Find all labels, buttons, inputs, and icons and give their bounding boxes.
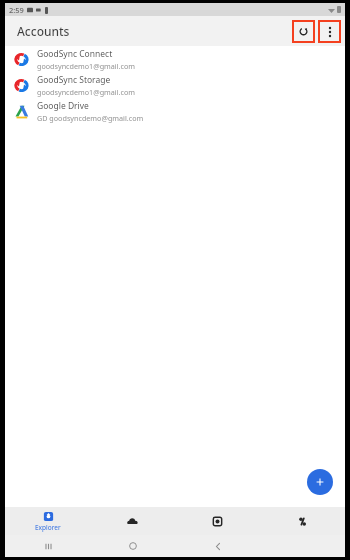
- staticText: Accounts: [17, 23, 70, 39]
- button[interactable]: Sync: [260, 507, 345, 535]
- button[interactable]: More options: [320, 22, 339, 41]
- staticText: 2:59: [9, 5, 24, 15]
- button[interactable]: Cloud: [90, 507, 175, 535]
- button[interactable]: Back: [209, 537, 227, 555]
- button[interactable]: Add account: [307, 469, 333, 495]
- button[interactable]: Jobs: [175, 507, 260, 535]
- button[interactable]: GoodSync Storage: [5, 72, 345, 98]
- button[interactable]: Home: [124, 537, 142, 555]
- staticText: GoodSync Connect: [37, 48, 113, 60]
- staticText: goodsyncdemo1@gmail.com: [37, 87, 135, 97]
- button[interactable]: Recents: [39, 537, 57, 555]
- button[interactable]: Refresh: [294, 22, 313, 41]
- staticText: GoodSync Storage: [37, 74, 111, 86]
- staticText: GD goodsyncdemo@gmail.com: [37, 113, 144, 123]
- staticText: Explorer: [35, 523, 61, 532]
- button[interactable]: GoodSync Connect: [5, 46, 345, 72]
- staticText: Google Drive: [37, 100, 89, 112]
- button[interactable]: Google Drive: [5, 98, 345, 124]
- staticText: goodsyncdemo1@gmail.com: [37, 61, 135, 71]
- button[interactable]: Explorer: [5, 507, 90, 535]
